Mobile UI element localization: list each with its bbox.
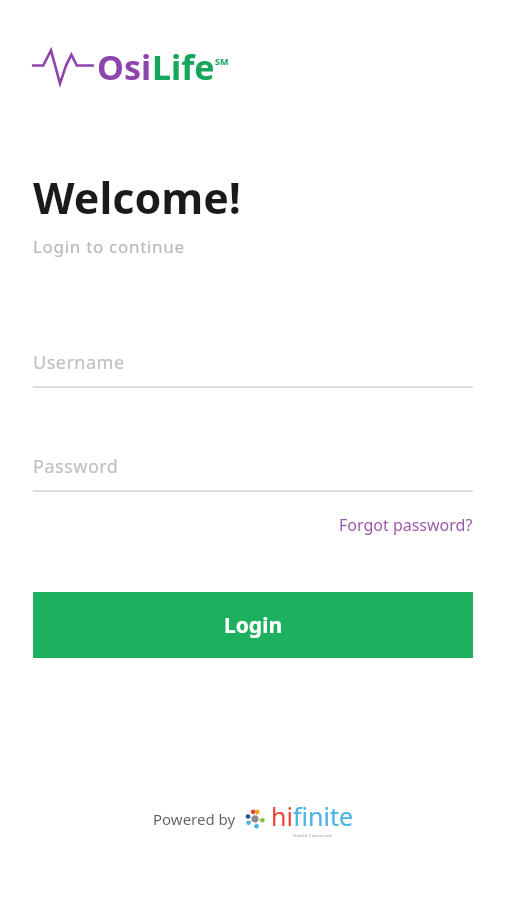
staticText: hi [271,799,293,833]
staticText: Login to continue [33,235,185,258]
staticText: Health Connected [293,833,332,838]
staticText: Password [33,454,119,479]
staticText: Forgot password? [339,514,473,536]
staticText: Powered by [153,809,236,829]
staticText: Osi [97,44,152,90]
staticText: Login [224,611,283,640]
button[interactable]: Forgot password? [337,510,475,540]
staticText: finite [293,799,354,833]
button[interactable]: Password [0,454,506,492]
staticText: Username [33,350,125,375]
staticText: Life [152,44,215,90]
staticText: SM [215,55,229,67]
staticText: Welcome! [33,168,241,227]
button[interactable]: Username [0,350,506,388]
button[interactable]: Login [33,592,473,658]
